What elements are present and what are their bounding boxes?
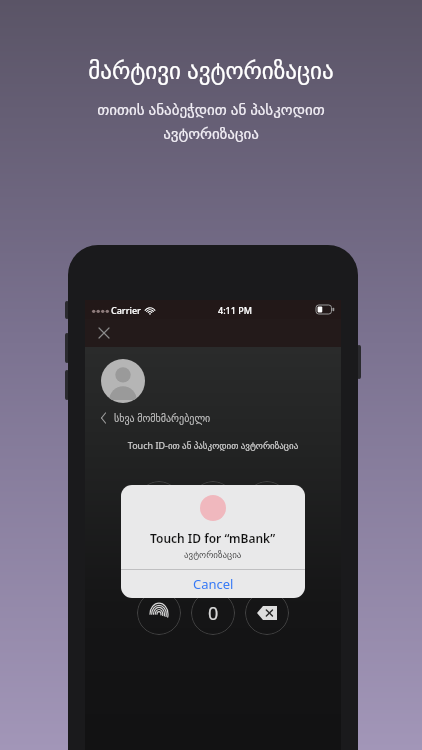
button[interactable]: 8 <box>191 536 235 580</box>
staticText: Touch ID-ით ან პასკოდით ავტორიზაცია <box>85 439 341 451</box>
button[interactable]: 5 <box>191 481 235 525</box>
staticText: ავტორიზაცია <box>184 550 242 560</box>
staticText: 8 <box>208 546 219 571</box>
staticText: თითის ანაბეჭდით ან პასკოდით ავტორიზაცია <box>97 99 325 143</box>
staticText: Touch ID for “mBank” <box>150 530 276 546</box>
staticText: Cancel <box>193 575 234 593</box>
button[interactable]: სხვა მომხმარებელი <box>99 411 211 425</box>
staticText: 5 <box>208 491 219 516</box>
button[interactable]: 0 <box>191 591 235 635</box>
staticText: 9 <box>262 546 273 571</box>
button[interactable]: Cancel <box>121 570 305 598</box>
button[interactable]: 9 <box>245 536 289 580</box>
button[interactable]: 4 <box>137 481 181 525</box>
staticText: სხვა მომხმარებელი <box>114 411 211 425</box>
button[interactable]: 6 <box>245 481 289 525</box>
staticText: 4:11 PM <box>218 304 252 316</box>
button[interactable]: 7 <box>137 536 181 580</box>
staticText: 0 <box>208 601 219 626</box>
staticText: მარტივი ავტორიზაცია <box>88 54 334 85</box>
button[interactable]: Delete <box>245 591 289 635</box>
button[interactable]: Fingerprint <box>137 591 181 635</box>
staticText: Carrier <box>111 304 141 316</box>
button[interactable]: Close <box>93 322 115 344</box>
staticText: 7 <box>154 546 165 571</box>
